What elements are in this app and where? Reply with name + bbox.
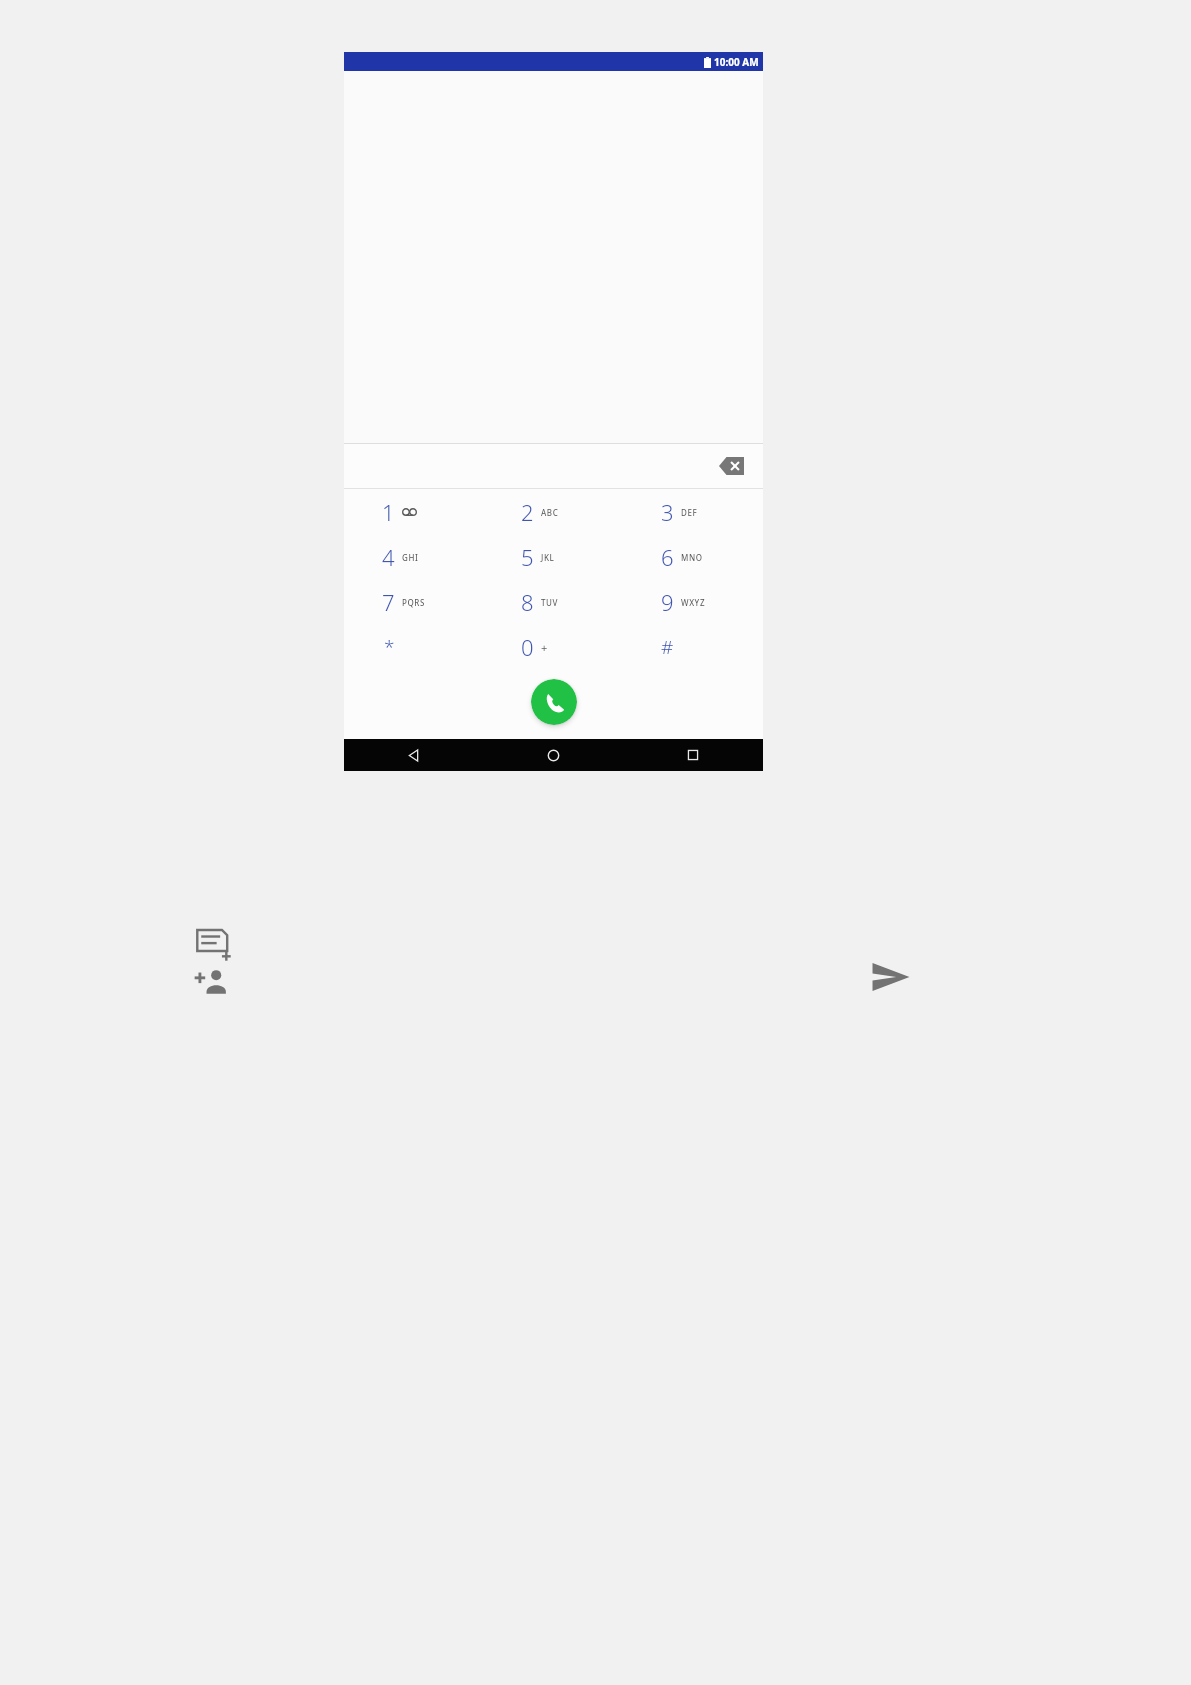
button[interactable]: 6 — [623, 534, 763, 579]
staticText: 7 — [382, 587, 395, 617]
staticText: + — [541, 640, 548, 655]
button[interactable]: 3 — [623, 489, 763, 534]
staticText: * — [384, 634, 395, 660]
staticText: MNO — [681, 552, 703, 563]
button[interactable]: Call — [531, 679, 577, 725]
staticText: 4 — [382, 542, 395, 572]
button[interactable]: 9 — [623, 579, 763, 624]
button[interactable]: Back — [344, 739, 483, 771]
staticText: 5 — [521, 542, 534, 572]
button[interactable]: Home — [483, 739, 623, 771]
staticText: TUV — [541, 597, 559, 608]
button[interactable]: 8 — [483, 579, 623, 624]
button[interactable]: Recent apps — [623, 739, 763, 771]
button[interactable]: * — [344, 624, 483, 669]
staticText: 8 — [521, 587, 534, 617]
button[interactable]: 4 — [344, 534, 483, 579]
button[interactable]: # — [623, 624, 763, 669]
staticText: 1 — [382, 497, 395, 527]
button[interactable]: 5 — [483, 534, 623, 579]
staticText: 2 — [521, 497, 534, 527]
staticText: 3 — [661, 497, 674, 527]
button[interactable]: Send — [869, 955, 913, 999]
button[interactable]: 7 — [344, 579, 483, 624]
staticText: # — [661, 634, 674, 660]
button[interactable]: 1 — [344, 489, 483, 534]
staticText: 10:00 AM — [714, 55, 759, 69]
button[interactable]: Add contact — [192, 962, 236, 1006]
staticText: 9 — [661, 587, 674, 617]
button[interactable]: Delete — [711, 449, 751, 483]
button[interactable]: 0 — [483, 624, 623, 669]
staticText: GHI — [402, 552, 419, 563]
staticText: PQRS — [402, 597, 426, 608]
staticText: 0 — [521, 632, 534, 662]
staticText: JKL — [541, 552, 555, 563]
staticText: 6 — [661, 542, 674, 572]
staticText: ABC — [541, 507, 559, 518]
button[interactable]: 2 — [483, 489, 623, 534]
staticText: WXYZ — [681, 597, 706, 608]
button[interactable]: New message — [192, 922, 236, 966]
staticText: DEF — [681, 507, 698, 518]
